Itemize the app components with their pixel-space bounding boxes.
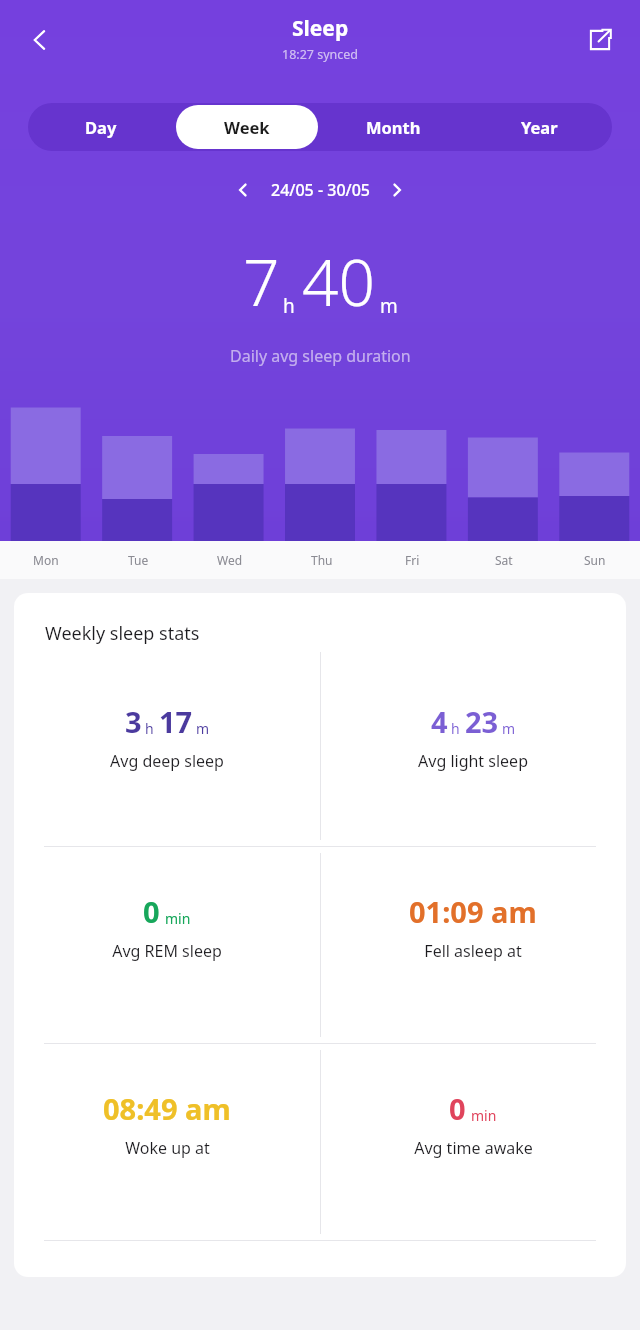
staticText: Daily avg sleep duration <box>230 345 411 367</box>
staticText: Week <box>224 116 270 138</box>
staticText: Year <box>521 116 558 138</box>
button[interactable]: 0 <box>320 1044 626 1240</box>
staticText: h <box>145 719 154 738</box>
button[interactable]: Week <box>176 105 318 149</box>
staticText: 0 <box>449 1089 466 1128</box>
staticText: min <box>165 909 191 928</box>
staticText: h <box>283 293 295 319</box>
button[interactable]: Day <box>30 105 172 149</box>
staticText: Wed <box>217 552 243 568</box>
button[interactable]: 08:49 am <box>14 1044 320 1240</box>
staticText: 7 <box>243 238 280 325</box>
staticText: Avg time awake <box>414 1137 533 1159</box>
staticText: Fri <box>405 552 420 568</box>
button[interactable]: Month <box>322 105 464 149</box>
staticText: 23 <box>465 702 499 741</box>
staticText: Woke up at <box>125 1137 210 1159</box>
staticText: Thu <box>311 552 333 568</box>
staticText: Weekly sleep stats <box>45 621 200 646</box>
staticText: 40 <box>302 238 376 325</box>
staticText: Sun <box>584 552 606 568</box>
staticText: Mon <box>33 552 59 568</box>
staticText: m <box>196 719 210 738</box>
staticText: m <box>502 719 516 738</box>
button[interactable]: Back <box>10 10 70 70</box>
staticText: h <box>451 719 460 738</box>
staticText: Day <box>85 116 117 138</box>
staticText: 3 <box>125 702 142 741</box>
staticText: m <box>380 293 398 319</box>
staticText: Sat <box>495 552 513 568</box>
button[interactable]: Year <box>468 105 610 149</box>
staticText: Fell asleep at <box>424 940 522 962</box>
staticText: 24/05 - 30/05 <box>271 179 370 201</box>
staticText: 01:09 am <box>409 892 537 931</box>
staticText: Avg light sleep <box>418 750 528 772</box>
staticText: Avg deep sleep <box>110 750 224 772</box>
staticText: min <box>471 1106 497 1125</box>
staticText: Sleep <box>292 14 349 43</box>
staticText: Tue <box>128 552 149 568</box>
staticText: Avg REM sleep <box>112 940 222 962</box>
staticText: 18:27 synced <box>282 46 359 63</box>
button[interactable]: 3 <box>14 646 320 846</box>
button[interactable]: Previous week <box>225 172 261 208</box>
staticText: 17 <box>159 702 193 741</box>
button[interactable]: 0 <box>14 847 320 1043</box>
staticText: 4 <box>431 702 448 741</box>
button[interactable]: Share <box>572 12 628 68</box>
button[interactable]: 4 <box>320 646 626 846</box>
staticText: 08:49 am <box>103 1089 231 1128</box>
staticText: Month <box>366 116 421 138</box>
button[interactable]: 01:09 am <box>320 847 626 1043</box>
staticText: 0 <box>143 892 160 931</box>
button[interactable]: Next week <box>379 172 415 208</box>
